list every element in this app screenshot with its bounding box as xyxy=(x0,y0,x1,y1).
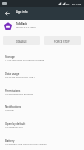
button[interactable]: Open by default xyxy=(0,122,84,139)
staticText: No defaults set xyxy=(5,125,23,128)
staticText: Data usage xyxy=(5,72,19,76)
staticText: DISABLE xyxy=(16,40,27,44)
staticText: version 6.2.0.19882 xyxy=(16,26,36,29)
staticText: Permissions xyxy=(5,89,20,93)
staticText: 39.49 KB used since Aug 1 xyxy=(5,75,35,78)
button[interactable]: FORCE STOP xyxy=(44,36,81,45)
staticText: Storage xyxy=(5,55,15,59)
staticText: 6:11 AM xyxy=(72,2,81,5)
staticText: Notifications xyxy=(5,105,21,109)
button[interactable]: DISABLE xyxy=(3,36,40,45)
button[interactable]: Storage xyxy=(0,55,84,72)
staticText: FORCE STOP xyxy=(54,40,70,44)
staticText: Normal xyxy=(5,108,14,111)
staticText: App info xyxy=(16,10,27,14)
button[interactable]: Navigate up xyxy=(0,7,14,20)
staticText: 5% xyxy=(66,2,70,5)
button[interactable]: Battery xyxy=(0,139,84,150)
staticText: Battery xyxy=(5,139,15,143)
button[interactable]: Permissions xyxy=(0,89,84,106)
staticText: 11.56 MB used in internal storage xyxy=(5,58,44,61)
staticText: No permissions granted xyxy=(5,92,33,95)
staticText: TalkBack xyxy=(16,22,27,25)
button[interactable]: Data usage xyxy=(0,72,84,89)
button[interactable]: Notifications xyxy=(0,105,84,122)
staticText: Open by default xyxy=(5,122,25,126)
staticText: No battery use since last full charge xyxy=(5,142,46,145)
